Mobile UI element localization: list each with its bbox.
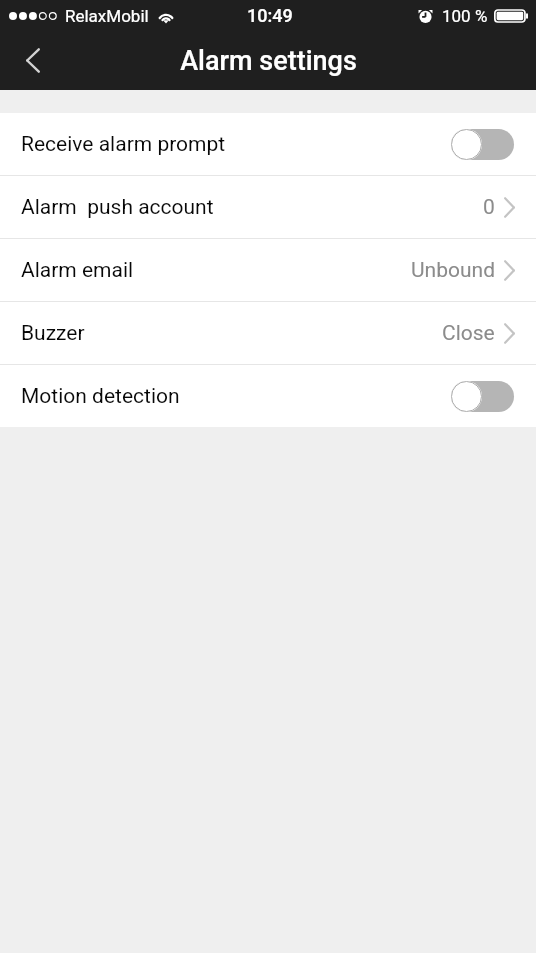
staticText: Alarm push account: [21, 195, 214, 220]
staticText: Unbound: [411, 258, 495, 283]
staticText: RelaxMobil: [65, 6, 149, 26]
staticText: Motion detection: [21, 384, 180, 409]
button[interactable]: Buzzer: [0, 302, 536, 364]
staticText: Receive alarm prompt: [21, 132, 226, 157]
staticText: Close: [442, 321, 495, 346]
staticText: Buzzer: [21, 321, 85, 346]
button[interactable]: Receive alarm prompt: [0, 113, 536, 175]
staticText: 0: [483, 195, 495, 220]
button[interactable]: Alarm push account: [0, 176, 536, 238]
staticText: 100 %: [442, 6, 488, 26]
staticText: Alarm email: [21, 258, 134, 283]
button[interactable]: Back: [0, 31, 66, 90]
button[interactable]: Toggle: [451, 381, 514, 412]
button[interactable]: Alarm email: [0, 239, 536, 301]
staticText: Alarm settings: [180, 45, 357, 77]
button[interactable]: Toggle: [451, 129, 514, 160]
button[interactable]: Motion detection: [0, 365, 536, 427]
staticText: 10:49: [247, 5, 293, 26]
